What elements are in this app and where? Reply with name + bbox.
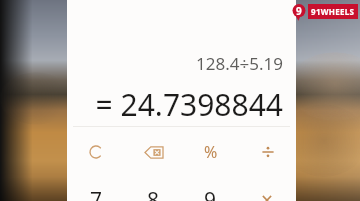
staticText: 9	[204, 186, 217, 201]
button[interactable]: ×	[239, 176, 296, 201]
staticText: 128.4÷5.19	[196, 52, 283, 75]
button[interactable]: 8	[125, 176, 182, 201]
button[interactable]: Clear	[67, 133, 125, 171]
staticText: = 24.7398844	[95, 84, 283, 125]
staticText: %	[204, 141, 218, 163]
button[interactable]: Divide	[239, 133, 296, 171]
button[interactable]: Percent	[182, 133, 239, 171]
staticText: 9	[296, 4, 302, 18]
staticText: 8	[147, 186, 160, 201]
staticText: ×	[261, 186, 274, 201]
button[interactable]: 7	[67, 176, 125, 201]
staticText: 7	[90, 186, 103, 201]
button[interactable]: 9	[182, 176, 239, 201]
button[interactable]: Backspace	[125, 133, 182, 171]
staticText: 91WHEELS	[311, 6, 355, 17]
